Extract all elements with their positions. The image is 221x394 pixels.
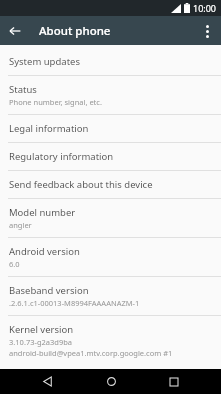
- button[interactable]: Baseband version: [0, 277, 221, 315]
- staticText: About phone: [39, 23, 111, 39]
- staticText: 3.10.73-g2a3d9ba: [9, 337, 73, 347]
- button[interactable]: Back: [4, 20, 26, 42]
- button[interactable]: Home: [94, 369, 128, 394]
- staticText: 10:00: [193, 2, 217, 14]
- staticText: 6.0: [9, 259, 20, 269]
- button[interactable]: Legal information: [0, 115, 221, 142]
- staticText: Baseband version: [9, 284, 89, 297]
- staticText: Android version: [9, 245, 80, 258]
- staticText: Send feedback about this device: [9, 178, 153, 191]
- staticText: Legal information: [9, 122, 89, 135]
- button[interactable]: Send feedback about this device: [0, 171, 221, 198]
- staticText: Status: [9, 83, 37, 96]
- button[interactable]: Android version: [0, 238, 221, 276]
- staticText: angler: [9, 220, 32, 230]
- button[interactable]: More options: [195, 19, 219, 43]
- button[interactable]: System updates: [0, 48, 221, 75]
- button[interactable]: Regulatory information: [0, 143, 221, 170]
- staticText: Phone number, signal, etc.: [9, 97, 102, 107]
- staticText: System updates: [9, 55, 80, 68]
- button[interactable]: Recent apps: [157, 369, 191, 394]
- button[interactable]: Back: [30, 369, 64, 394]
- button[interactable]: Status: [0, 76, 221, 114]
- staticText: Kernel version: [9, 323, 74, 336]
- staticText: .2.6.1.c1-00013-M8994FAAAANAZM-1: [9, 298, 140, 308]
- button[interactable]: Kernel version: [0, 316, 221, 369]
- button[interactable]: Model number: [0, 199, 221, 237]
- staticText: android-build@vpea1.mtv.corp.google.com …: [9, 348, 173, 358]
- staticText: Model number: [9, 206, 76, 219]
- staticText: Regulatory information: [9, 150, 114, 163]
